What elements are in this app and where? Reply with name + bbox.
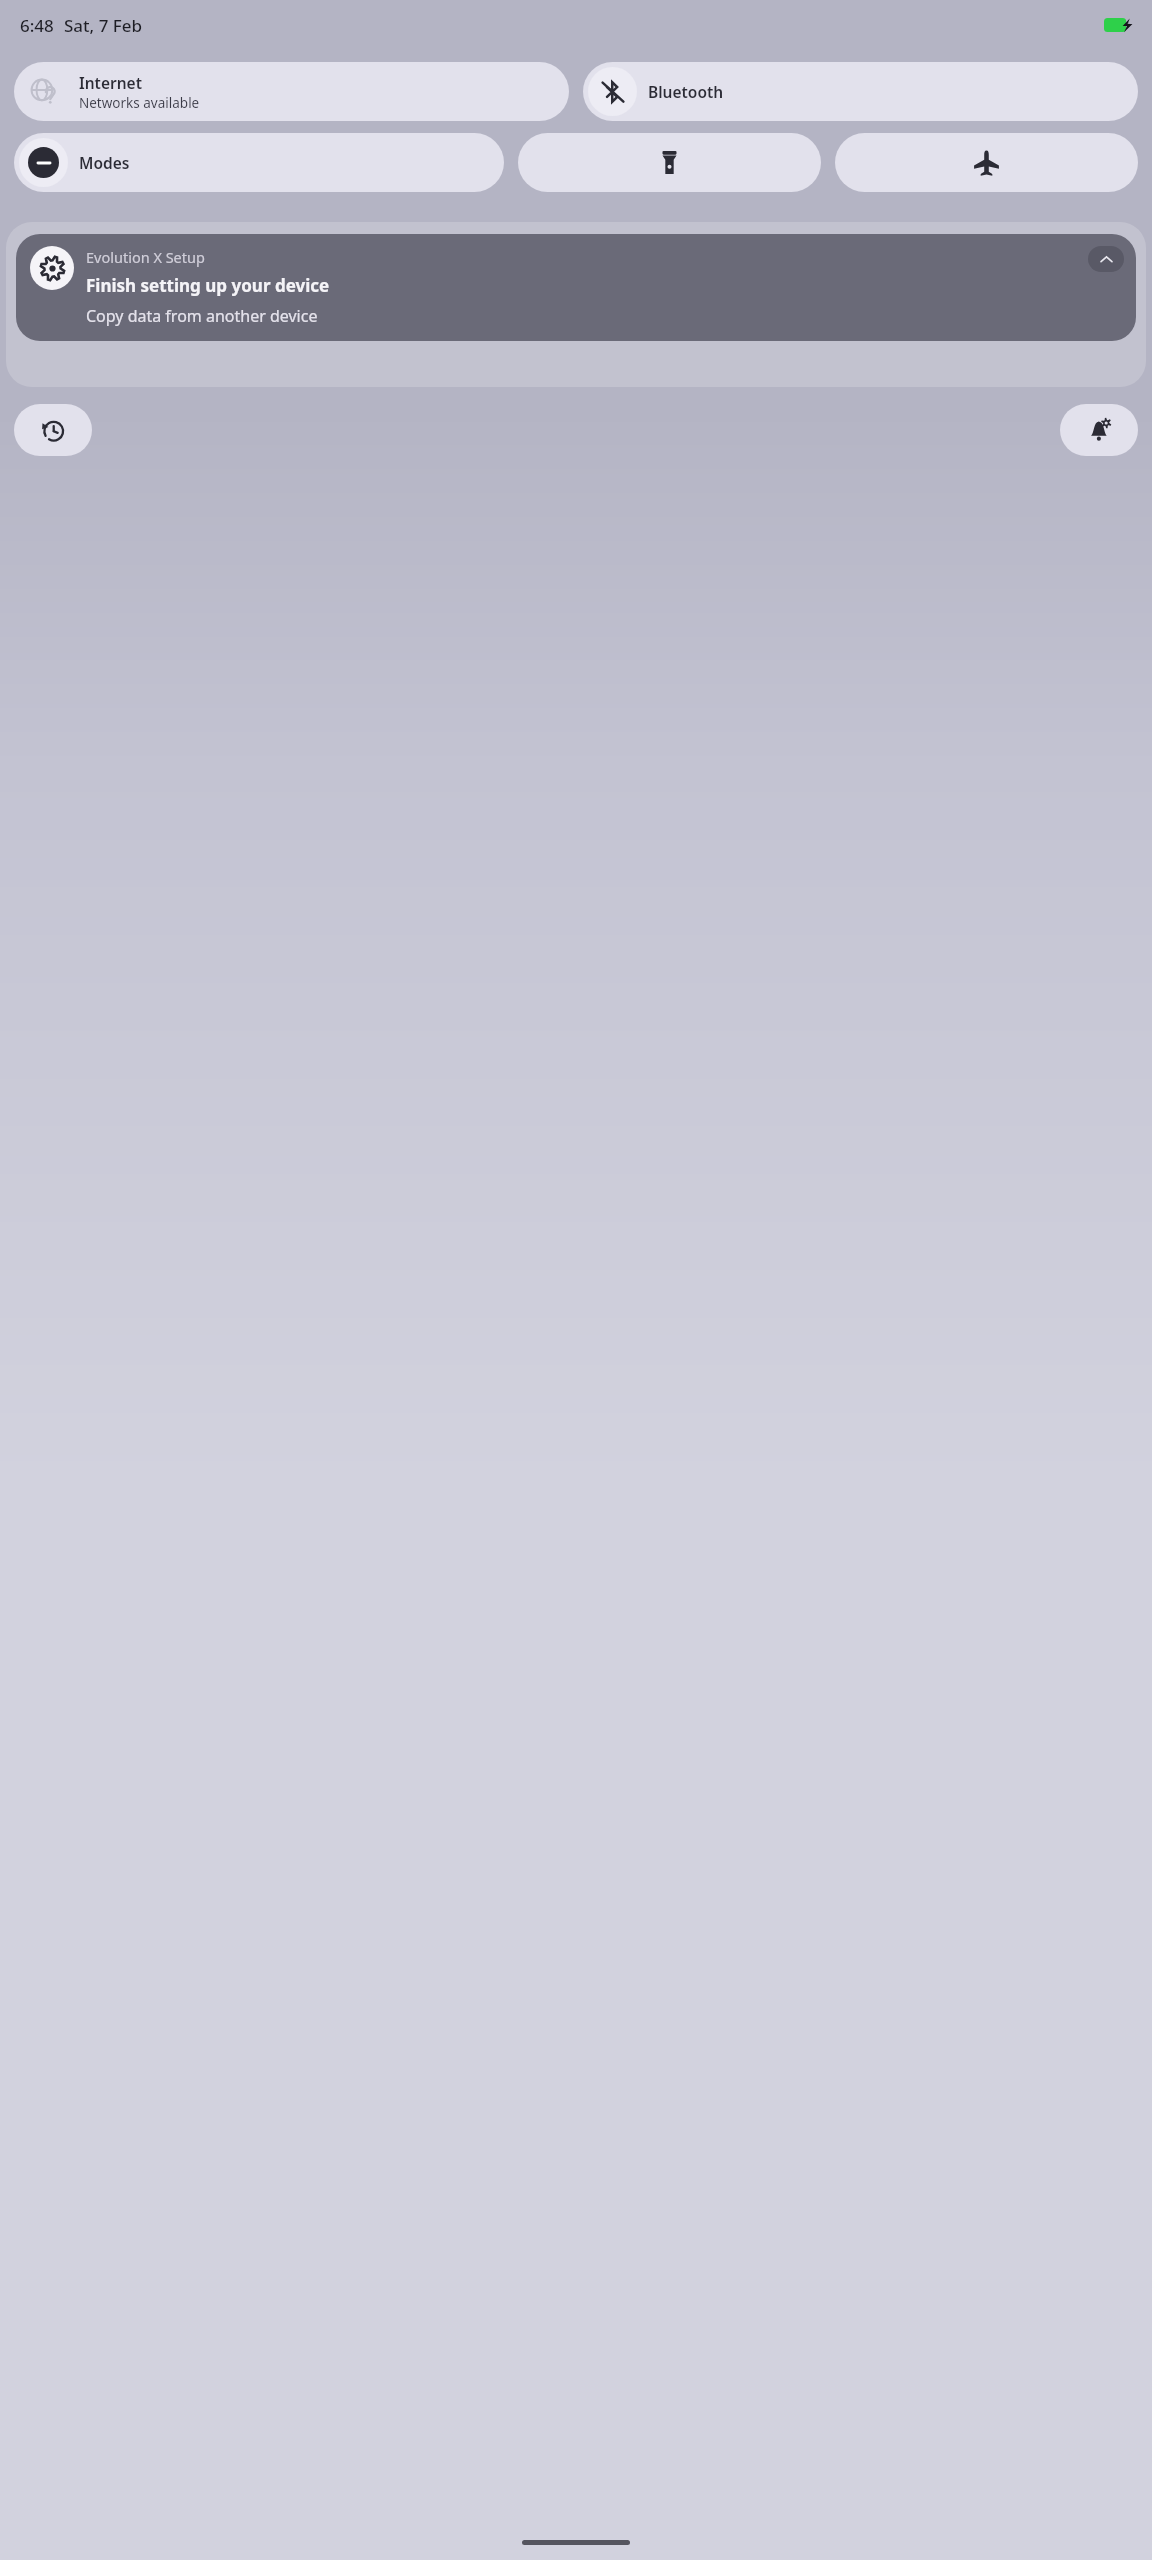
button[interactable]: Bluetooth xyxy=(583,62,1138,121)
staticText: Bluetooth xyxy=(648,81,724,102)
button[interactable]: Internet xyxy=(14,62,569,121)
staticText: Networks available xyxy=(79,94,200,112)
button[interactable]: Notification history xyxy=(14,404,92,456)
staticText: Copy data from another device xyxy=(86,305,318,327)
staticText: 6:48 xyxy=(20,14,54,37)
button[interactable]: Notification settings xyxy=(1060,404,1138,456)
button[interactable]: Airplane mode xyxy=(835,133,1138,192)
button[interactable]: Modes xyxy=(14,133,504,192)
staticText: Modes xyxy=(79,152,130,173)
staticText: Sat, 7 Feb xyxy=(64,14,143,37)
button[interactable]: Collapse xyxy=(1088,246,1124,272)
button[interactable]: Flashlight xyxy=(518,133,821,192)
staticText: Finish setting up your device xyxy=(86,274,330,297)
staticText: Internet xyxy=(79,72,142,93)
staticText: Evolution X Setup xyxy=(86,247,205,267)
button[interactable]: Evolution X Setup xyxy=(16,234,1136,341)
